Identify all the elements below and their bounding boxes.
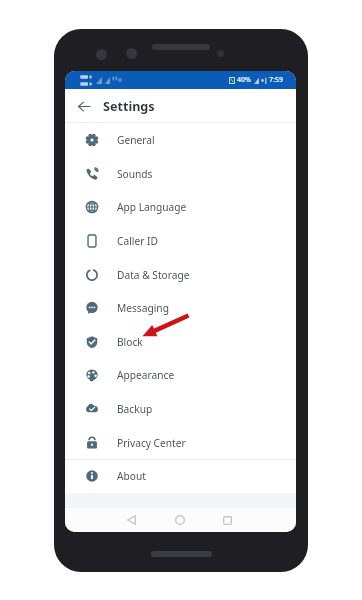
staticText: Caller ID bbox=[117, 234, 158, 248]
button[interactable]: General bbox=[65, 123, 296, 157]
staticText: Settings bbox=[103, 98, 155, 115]
button[interactable]: Back bbox=[119, 508, 143, 532]
button[interactable]: About bbox=[65, 459, 296, 493]
staticText: Data & Storage bbox=[117, 268, 190, 282]
button[interactable]: Caller ID bbox=[65, 224, 296, 258]
button[interactable]: Data & Storage bbox=[65, 258, 296, 292]
staticText: 40% bbox=[237, 75, 251, 85]
staticText: Backup bbox=[117, 402, 153, 416]
staticText: Messaging bbox=[117, 301, 169, 315]
button[interactable]: Back bbox=[65, 89, 103, 123]
button[interactable]: Messaging bbox=[65, 291, 296, 325]
button[interactable]: Privacy Center bbox=[65, 426, 296, 460]
button[interactable]: Backup bbox=[65, 392, 296, 426]
staticText: 7:59 bbox=[269, 75, 283, 85]
button[interactable]: App Language bbox=[65, 190, 296, 224]
button[interactable]: Appearance bbox=[65, 358, 296, 392]
staticText: General bbox=[117, 133, 155, 147]
staticText: Sounds bbox=[117, 167, 153, 181]
button[interactable]: Recents bbox=[215, 508, 239, 532]
button[interactable]: Home bbox=[168, 508, 192, 532]
staticText: Privacy Center bbox=[117, 436, 186, 450]
staticText: App Language bbox=[117, 200, 187, 214]
staticText: Appearance bbox=[117, 368, 175, 382]
button[interactable]: Sounds bbox=[65, 157, 296, 191]
staticText: Block bbox=[117, 335, 143, 349]
staticText: About bbox=[117, 469, 146, 483]
button[interactable]: Block bbox=[65, 325, 296, 359]
